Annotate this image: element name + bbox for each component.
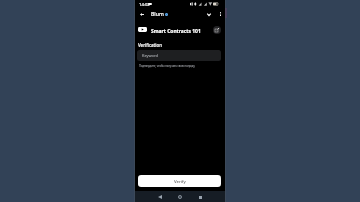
staticText: 14:02 xyxy=(139,2,150,8)
staticText: Verification xyxy=(138,42,162,48)
staticText: Blum xyxy=(151,11,164,18)
button[interactable]: Home xyxy=(175,192,185,202)
button[interactable]: Open in browser xyxy=(213,26,221,34)
staticText: Smart Contracts 101 xyxy=(151,28,201,35)
button[interactable]: Back xyxy=(155,192,165,202)
staticText: Verify xyxy=(174,178,186,184)
button[interactable]: Recents xyxy=(195,192,205,202)
staticText: Keyword xyxy=(142,53,158,58)
staticText: Подтвердите, чтобы получить свою награду xyxy=(139,64,195,68)
button[interactable]: Expand xyxy=(204,9,214,19)
button[interactable]: Keyword xyxy=(137,50,221,61)
button[interactable]: Back xyxy=(137,9,147,19)
button[interactable]: More options xyxy=(215,9,225,19)
button[interactable]: Verify xyxy=(138,175,221,187)
